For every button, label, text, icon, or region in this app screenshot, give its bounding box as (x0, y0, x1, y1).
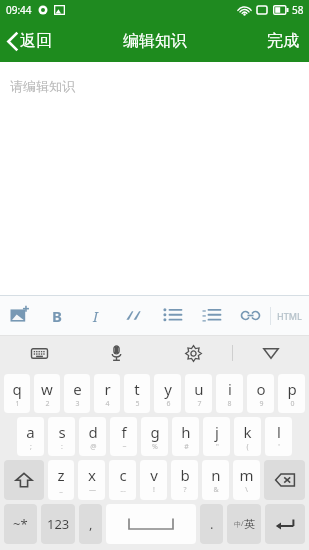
staticText: 6 (166, 399, 171, 409)
staticText: 请编辑知识 (10, 78, 75, 94)
button[interactable]: Bulleted list (153, 296, 192, 335)
button[interactable]: Enter (265, 504, 305, 544)
button[interactable]: HTML (270, 296, 309, 335)
button[interactable]: z (48, 460, 74, 500)
staticText: 8 (227, 399, 232, 409)
button[interactable]: a (17, 417, 44, 456)
staticText: % (152, 442, 158, 452)
button[interactable]: ~* (4, 504, 37, 544)
staticText: ... (120, 485, 126, 495)
staticText: e (73, 379, 82, 399)
button[interactable]: Link (231, 296, 270, 335)
staticText: d (88, 422, 98, 442)
button[interactable]: Backspace (264, 460, 305, 500)
button[interactable]: p (278, 374, 305, 413)
staticText: , (89, 515, 93, 533)
staticText: 中 (234, 520, 241, 529)
staticText: — (89, 485, 96, 495)
button[interactable]: m (233, 460, 260, 500)
button[interactable]: . (200, 504, 223, 544)
button[interactable]: x (78, 460, 105, 500)
staticText: i (228, 379, 232, 399)
button[interactable]: y (154, 374, 181, 413)
staticText: n (211, 465, 221, 485)
button[interactable]: b (171, 460, 198, 500)
button[interactable]: l (265, 417, 292, 456)
button[interactable]: j (203, 417, 230, 456)
staticText: 58 (292, 3, 304, 17)
staticText: w (41, 379, 53, 399)
button[interactable]: Hide keyboard (232, 336, 309, 370)
staticText: ! (153, 485, 155, 495)
staticText: 2 (45, 399, 50, 409)
button[interactable]: g (141, 417, 168, 456)
button[interactable]: Quote (114, 296, 153, 335)
button[interactable]: Keyboard layout (0, 336, 78, 370)
staticText: u (194, 379, 204, 399)
staticText: p (287, 379, 297, 399)
button[interactable]: Shift (4, 460, 44, 500)
staticText: o (256, 379, 266, 399)
button[interactable]: c (109, 460, 136, 500)
button[interactable]: h (172, 417, 199, 456)
button[interactable]: k (234, 417, 261, 456)
staticText: ? (183, 485, 187, 495)
button[interactable]: 返回 (0, 20, 60, 62)
button[interactable]: 请编辑知识 (0, 62, 309, 295)
staticText: g (150, 422, 160, 442)
button[interactable]: o (247, 374, 274, 413)
button[interactable]: e (64, 374, 90, 413)
staticText: r (104, 379, 111, 399)
staticText: / (241, 519, 244, 529)
staticText: 4 (105, 399, 110, 409)
staticText: & (213, 485, 219, 495)
staticText: ( (246, 442, 249, 452)
staticText: 完成 (267, 31, 299, 51)
staticText: l (277, 422, 281, 442)
staticText: ' (278, 442, 280, 452)
button[interactable]: r (94, 374, 120, 413)
button[interactable]: Space (106, 504, 196, 544)
button[interactable]: w (34, 374, 60, 413)
button[interactable]: Insert image (0, 296, 38, 335)
staticText: z (57, 465, 65, 485)
staticText: \ (245, 485, 248, 495)
staticText: 3 (75, 399, 80, 409)
button[interactable]: f (110, 417, 137, 456)
button[interactable]: , (79, 504, 102, 544)
button[interactable]: 123 (41, 504, 75, 544)
button[interactable]: i (216, 374, 243, 413)
staticText: f (121, 422, 127, 442)
staticText: I (93, 306, 98, 326)
staticText: # (184, 442, 189, 452)
staticText: HTML (277, 310, 302, 322)
staticText: x (88, 465, 96, 485)
button[interactable]: Numbered list (192, 296, 231, 335)
staticText: @ (90, 442, 97, 452)
button[interactable]: Italic (76, 296, 114, 335)
staticText: 7 (197, 399, 202, 409)
staticText: ~* (13, 515, 28, 533)
staticText: " (216, 442, 219, 452)
button[interactable]: d (79, 417, 106, 456)
button[interactable]: v (140, 460, 167, 500)
staticText: . (210, 515, 214, 533)
staticText: 5 (135, 399, 140, 409)
button[interactable]: u (185, 374, 212, 413)
staticText: 9 (259, 399, 264, 409)
button[interactable]: n (202, 460, 229, 500)
staticText: 0 (290, 399, 295, 409)
staticText: j (215, 422, 219, 442)
staticText: 09:44 (6, 3, 32, 17)
staticText: : (61, 442, 63, 452)
button[interactable]: q (4, 374, 30, 413)
button[interactable]: s (48, 417, 75, 456)
button[interactable]: Bold (38, 296, 76, 335)
button[interactable]: Voice input (78, 336, 155, 370)
staticText: 1 (15, 399, 20, 409)
staticText: c (119, 465, 127, 485)
button[interactable]: 完成 (257, 20, 309, 62)
button[interactable]: Settings (155, 336, 232, 370)
button[interactable]: Chinese English toggle (227, 504, 261, 544)
button[interactable]: t (124, 374, 150, 413)
